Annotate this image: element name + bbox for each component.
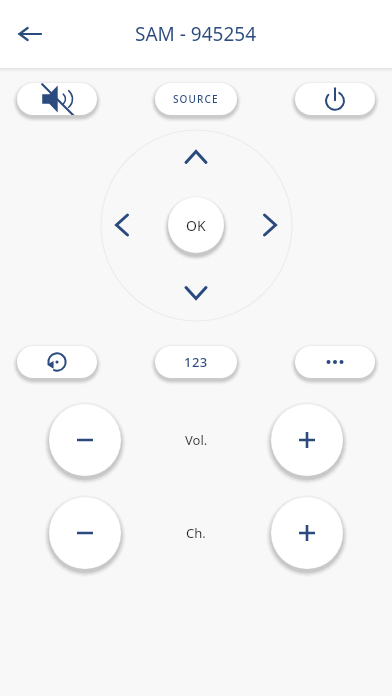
- staticText: SOURCE: [173, 92, 219, 106]
- button[interactable]: Down: [168, 273, 224, 313]
- button[interactable]: Numbers: [155, 346, 237, 378]
- button[interactable]: Vol. up: [271, 404, 343, 476]
- staticText: Ch.: [186, 524, 206, 542]
- button[interactable]: Source: [155, 83, 237, 115]
- staticText: OK: [186, 216, 206, 235]
- button[interactable]: Left: [102, 197, 142, 253]
- button[interactable]: Vol. down: [49, 404, 121, 476]
- staticText: 123: [184, 353, 208, 371]
- button[interactable]: Ch. up: [271, 497, 343, 569]
- button[interactable]: Power: [295, 83, 375, 115]
- button[interactable]: Ch. down: [49, 497, 121, 569]
- button[interactable]: OK: [168, 197, 224, 253]
- button[interactable]: Back: [6, 10, 54, 58]
- button[interactable]: Replay: [17, 346, 97, 378]
- staticText: Vol.: [185, 431, 208, 449]
- button[interactable]: More options: [295, 346, 375, 378]
- button[interactable]: Mute: [17, 83, 97, 115]
- button[interactable]: Right: [250, 197, 290, 253]
- staticText: SAM - 945254: [135, 21, 257, 47]
- button[interactable]: Up: [168, 137, 224, 177]
